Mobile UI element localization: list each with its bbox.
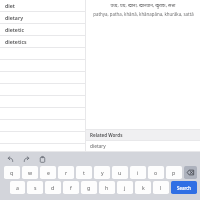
button[interactable]: i (130, 166, 146, 179)
button[interactable]: y (94, 166, 110, 179)
staticText: l (160, 184, 162, 191)
button[interactable]: s (27, 181, 43, 194)
button[interactable]: r (58, 166, 74, 179)
staticText: f (70, 184, 72, 191)
staticText: d (51, 184, 55, 191)
button[interactable]: Paste (38, 155, 47, 164)
staticText: dietetic (5, 26, 25, 33)
button[interactable]: Undo (6, 155, 15, 164)
button[interactable]: dietary (0, 12, 85, 24)
staticText: s (34, 184, 37, 191)
button[interactable]: g (81, 181, 97, 194)
staticText: a (16, 184, 19, 191)
button[interactable]: h (99, 181, 115, 194)
staticText: p (172, 169, 176, 176)
button[interactable]: q (4, 166, 20, 179)
staticText: w (28, 169, 33, 176)
button[interactable]: Search (171, 181, 197, 194)
staticText: Search (177, 185, 192, 191)
button[interactable]: e (40, 166, 56, 179)
button[interactable]: Redo (22, 155, 31, 164)
staticText: dietary (90, 143, 106, 150)
staticText: g (87, 184, 91, 191)
button[interactable]: k (135, 181, 151, 194)
button[interactable]: u (112, 166, 128, 179)
staticText: e (47, 169, 50, 176)
staticText: dietary (5, 14, 23, 21)
button[interactable]: Backspace (184, 166, 197, 179)
button[interactable]: d (45, 181, 61, 194)
staticText: y (101, 169, 104, 176)
staticText: o (154, 169, 158, 176)
staticText: h (105, 184, 109, 191)
button[interactable]: f (63, 181, 79, 194)
staticText: j (124, 184, 126, 191)
staticText: t (83, 169, 85, 176)
staticText: Related Words (90, 132, 123, 138)
staticText: पथ्य, पथ, खाना, खानपान, खुराक, सत्ता (110, 2, 176, 8)
button[interactable]: w (22, 166, 38, 179)
button[interactable]: p (166, 166, 182, 179)
button[interactable]: dietary (86, 141, 200, 151)
button[interactable]: dietetics (0, 36, 85, 48)
staticText: r (65, 169, 68, 176)
button[interactable]: l (153, 181, 169, 194)
staticText: k (142, 184, 145, 191)
staticText: diet (5, 2, 15, 9)
button[interactable]: j (117, 181, 133, 194)
staticText: dietetics (5, 38, 27, 45)
button[interactable]: o (148, 166, 164, 179)
staticText: i (137, 169, 139, 176)
staticText: u (118, 169, 122, 176)
button[interactable]: dietetic (0, 24, 85, 36)
button[interactable]: diet (0, 0, 85, 12)
button[interactable]: a (10, 181, 25, 194)
button[interactable]: t (76, 166, 92, 179)
staticText: pathya, patha, khānā, khānapāna, khurāka… (93, 11, 194, 17)
staticText: q (10, 169, 14, 176)
